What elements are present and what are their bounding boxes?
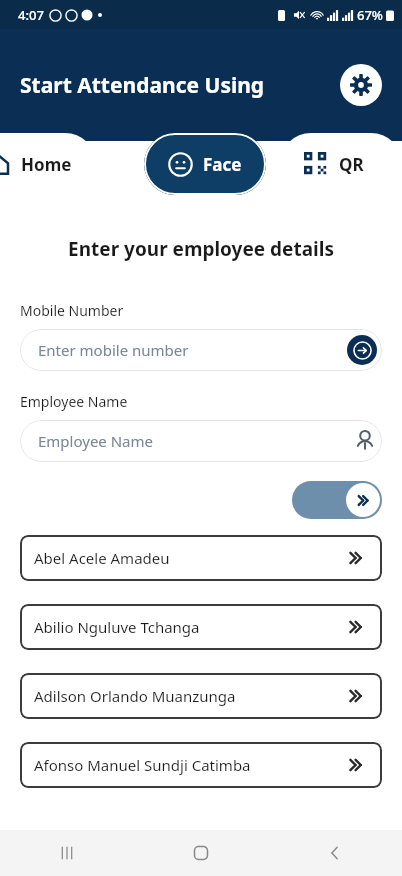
button[interactable]: Face	[144, 133, 266, 195]
staticText: Employee Name	[38, 431, 353, 451]
staticText: Start Attendance Using	[20, 71, 340, 100]
button[interactable]: Home	[134, 830, 268, 876]
button[interactable]: Home	[0, 133, 96, 195]
staticText: Enter your employee details	[0, 236, 402, 262]
staticText: Abilio Nguluve Tchanga	[34, 617, 346, 637]
button[interactable]: Toggle employee list	[292, 481, 382, 519]
staticText: Enter mobile number	[38, 340, 347, 360]
staticText: Abel Acele Amadeu	[34, 548, 346, 568]
button[interactable]: Submit mobile number	[347, 335, 377, 365]
staticText: Afonso Manuel Sundji Catimba	[34, 755, 346, 775]
staticText: Face	[203, 153, 242, 176]
button[interactable]: Enter mobile number	[20, 329, 382, 371]
staticText: Employee Name	[20, 392, 128, 411]
button[interactable]: Afonso Manuel Sundji Catimba	[20, 742, 382, 788]
button[interactable]: Recent apps	[0, 830, 134, 876]
staticText: 67%	[357, 6, 383, 24]
button[interactable]: Adilson Orlando Muanzunga	[20, 673, 382, 719]
button[interactable]: Back	[268, 830, 402, 876]
button[interactable]: Abilio Nguluve Tchanga	[20, 604, 382, 650]
button[interactable]: QR Code	[280, 133, 402, 195]
staticText: 4:07	[18, 6, 44, 24]
button[interactable]: Abel Acele Amadeu	[20, 535, 382, 581]
button[interactable]: Pick employee	[353, 429, 377, 453]
button[interactable]: Employee Name	[20, 420, 382, 462]
staticText: QR Code	[339, 153, 378, 176]
staticText: Mobile Number	[20, 301, 124, 320]
staticText: Adilson Orlando Muanzunga	[34, 686, 346, 706]
staticText: Home	[21, 153, 72, 176]
button[interactable]: Settings	[340, 64, 382, 106]
